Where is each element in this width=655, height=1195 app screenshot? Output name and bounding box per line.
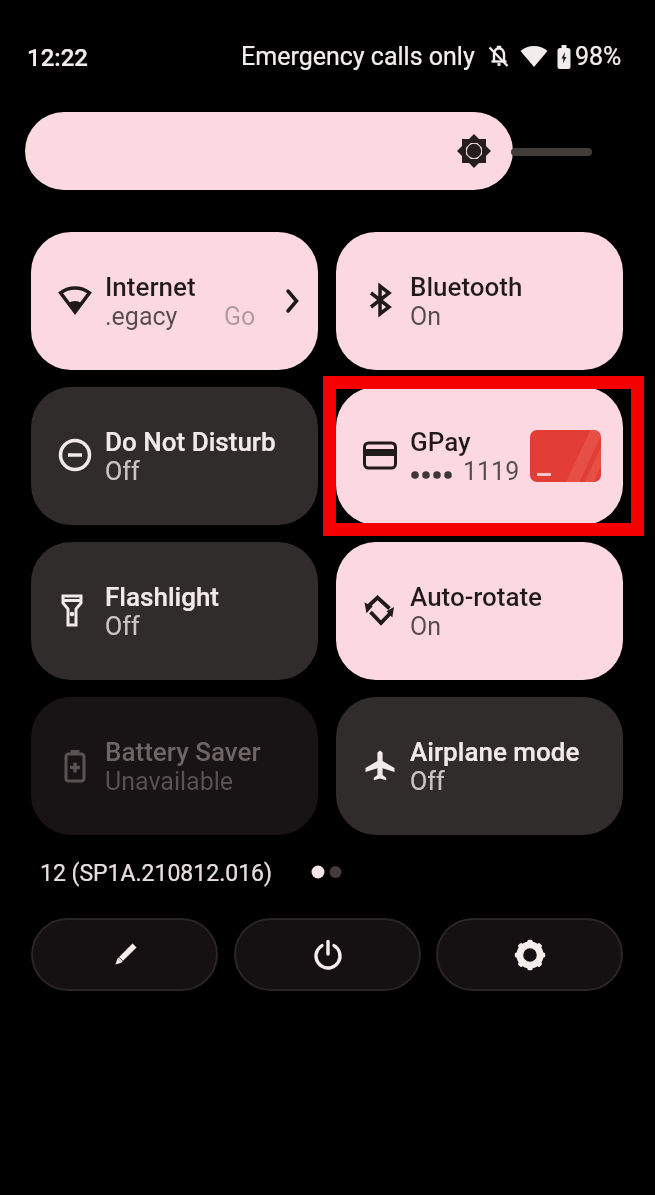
staticText: Do Not Disturb [105, 427, 276, 457]
staticText: Off [410, 767, 445, 796]
staticText: 12 (SP1A.210812.016) [40, 860, 272, 887]
staticText: 12:22 [27, 44, 88, 72]
staticText: On [410, 612, 442, 641]
staticText: Internet [105, 272, 196, 302]
button[interactable] [234, 918, 421, 991]
button[interactable]: GPay [336, 387, 623, 525]
button[interactable]: Internet [31, 232, 318, 370]
button[interactable]: Battery Saver [31, 697, 318, 835]
staticText: GPay [410, 427, 471, 457]
staticText: Off [105, 612, 140, 641]
staticText: 98% [575, 42, 622, 71]
button[interactable] [436, 918, 623, 991]
staticText: Airplane mode [410, 737, 580, 767]
button[interactable]: Auto-rotate [336, 542, 623, 680]
staticText: Off [105, 457, 140, 486]
staticText: Emergency calls only [241, 42, 475, 71]
staticText: Bluetooth [410, 272, 523, 302]
button[interactable]: Bluetooth [336, 232, 623, 370]
staticText: Unavailable [105, 767, 234, 796]
staticText: Flashlight [105, 582, 220, 612]
button[interactable] [31, 918, 218, 991]
button[interactable] [25, 112, 513, 190]
button[interactable]: Airplane mode [336, 697, 623, 835]
button[interactable]: Do Not Disturb [31, 387, 318, 525]
staticText: Auto-rotate [410, 582, 543, 612]
staticText: 1119 [463, 457, 520, 486]
button[interactable]: Flashlight [31, 542, 318, 680]
staticText: Go [224, 302, 256, 331]
staticText: .egacy [105, 302, 178, 331]
staticText: Battery Saver [105, 737, 261, 767]
staticText: On [410, 302, 442, 331]
